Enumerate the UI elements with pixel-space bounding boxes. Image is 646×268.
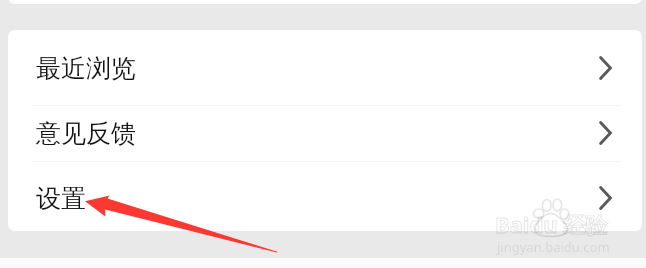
staticText: 意见反馈 <box>36 118 136 149</box>
staticText: 设置 <box>36 183 86 214</box>
button[interactable]: 设置 <box>8 162 642 231</box>
staticText: Baidu 经验 <box>495 209 608 239</box>
staticText: 最近浏览 <box>36 53 136 84</box>
other: Baidu logo <box>532 198 572 238</box>
button[interactable]: 意见反馈 <box>8 106 642 161</box>
staticText: jingyan.baidu.com <box>497 238 610 256</box>
button[interactable]: 最近浏览 <box>8 30 642 105</box>
